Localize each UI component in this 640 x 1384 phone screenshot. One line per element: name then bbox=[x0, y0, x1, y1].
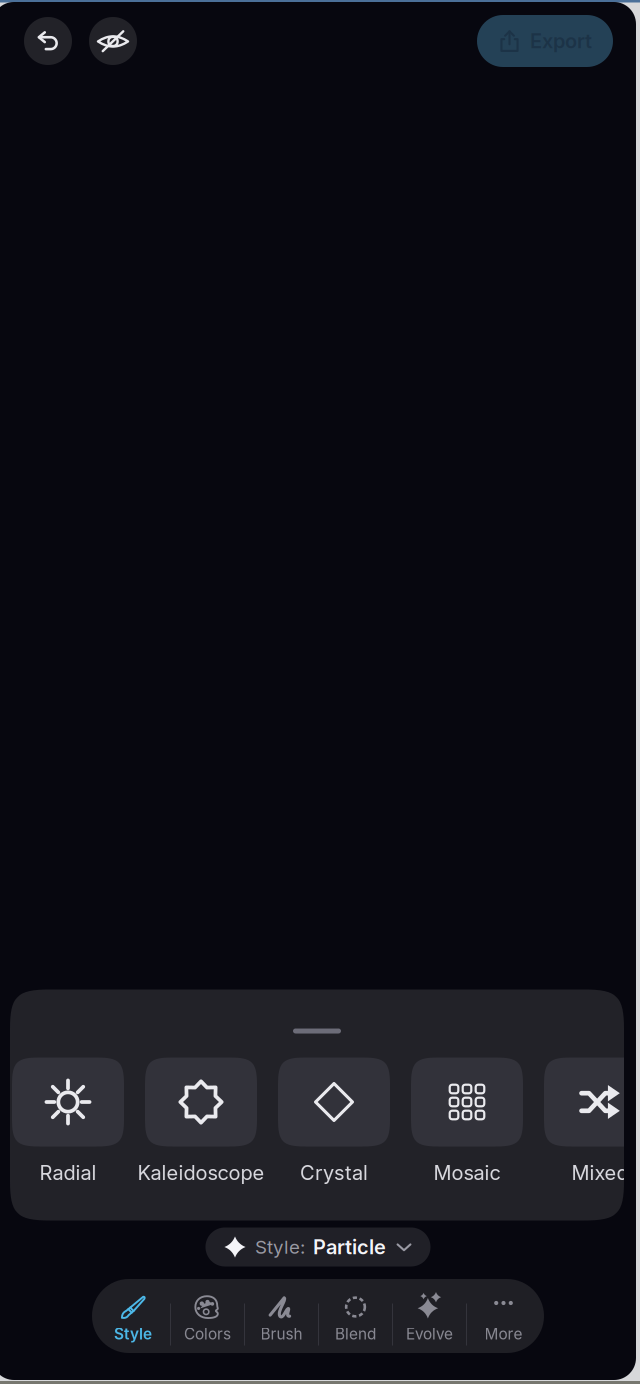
staticText: Evolve bbox=[406, 1325, 453, 1343]
staticText: Export bbox=[530, 29, 592, 53]
button[interactable]: Evolve bbox=[393, 1279, 466, 1353]
button[interactable]: More bbox=[467, 1279, 540, 1353]
staticText: Crystal bbox=[300, 1160, 368, 1185]
button[interactable]: Colors bbox=[171, 1279, 244, 1353]
staticText: Kaleidoscope bbox=[137, 1160, 264, 1185]
button[interactable]: Mosaic bbox=[411, 1057, 523, 1189]
staticText: Style: bbox=[255, 1236, 305, 1258]
staticText: Radial bbox=[39, 1160, 96, 1185]
staticText: Brush bbox=[260, 1325, 302, 1343]
staticText: Particle bbox=[313, 1235, 386, 1259]
button[interactable]: Blend bbox=[319, 1279, 392, 1353]
button[interactable]: Style: bbox=[205, 1227, 430, 1266]
staticText: Style bbox=[114, 1325, 152, 1343]
button[interactable]: Mixed bbox=[544, 1057, 640, 1189]
button[interactable]: Export bbox=[477, 15, 613, 67]
button[interactable]: Undo bbox=[24, 17, 72, 65]
button[interactable]: Crystal bbox=[278, 1057, 390, 1189]
button[interactable]: Style bbox=[96, 1279, 170, 1353]
button[interactable]: Radial bbox=[12, 1057, 124, 1189]
button[interactable]: Brush bbox=[245, 1279, 318, 1353]
staticText: Mixed bbox=[571, 1160, 628, 1185]
staticText: Colors bbox=[184, 1325, 231, 1343]
staticText: More bbox=[484, 1325, 522, 1343]
staticText: Blend bbox=[335, 1325, 376, 1343]
button[interactable]: Hide controls bbox=[89, 17, 137, 65]
staticText: Mosaic bbox=[433, 1160, 500, 1185]
button[interactable]: Kaleidoscope bbox=[145, 1057, 257, 1189]
